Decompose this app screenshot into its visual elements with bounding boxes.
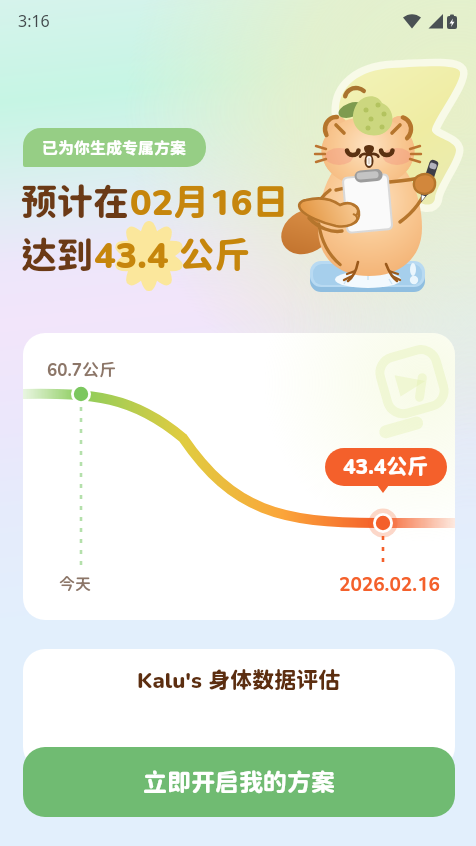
staticText: 立即开启我的方案 [143,768,335,796]
staticText: 2026.02.16 [339,573,440,595]
button[interactable]: 已为你生成专属方案 [23,128,206,167]
staticText: 预计在 [21,180,130,222]
staticText: Kalu's 身体数据评估 [137,667,341,693]
staticText: 已为你生成专属方案 [42,138,187,157]
staticText: 达到 [21,233,94,275]
staticText: 43.4 公斤 [94,233,251,275]
button[interactable]: 立即开启我的方案 [23,747,455,817]
staticText: 今天 [59,574,92,593]
button[interactable]: 43.4公斤 [325,448,447,486]
staticText: 02月16日 [130,180,289,222]
staticText: 43.4公斤 [343,454,429,479]
button[interactable]: Kalu's 身体数据评估 [23,649,455,769]
staticText: 60.7公斤 [47,360,116,380]
staticText: 3:16 [18,10,50,32]
